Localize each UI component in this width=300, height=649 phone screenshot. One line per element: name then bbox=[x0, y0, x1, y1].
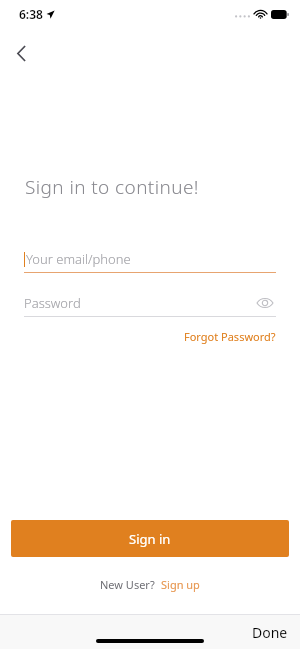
button[interactable]: Show password bbox=[254, 292, 276, 314]
staticText: Forgot Password? bbox=[184, 329, 276, 344]
button[interactable]: Sign up bbox=[161, 577, 200, 592]
button[interactable]: Forgot Password? bbox=[182, 327, 278, 346]
button[interactable]: Password bbox=[24, 290, 276, 316]
button[interactable]: Done bbox=[240, 617, 300, 648]
button[interactable]: Sign in bbox=[11, 520, 289, 557]
button[interactable]: Your email/phone bbox=[24, 246, 276, 272]
staticText: Password bbox=[24, 294, 81, 312]
staticText: 6:38 bbox=[19, 6, 43, 22]
staticText: Your email/phone bbox=[26, 250, 131, 268]
button[interactable]: Back bbox=[4, 36, 38, 70]
staticText: Sign in bbox=[129, 530, 171, 548]
staticText: New User? bbox=[100, 577, 155, 592]
staticText: Done bbox=[252, 623, 288, 642]
staticText: Sign up bbox=[161, 577, 200, 592]
staticText: Sign in to continue! bbox=[25, 174, 199, 200]
